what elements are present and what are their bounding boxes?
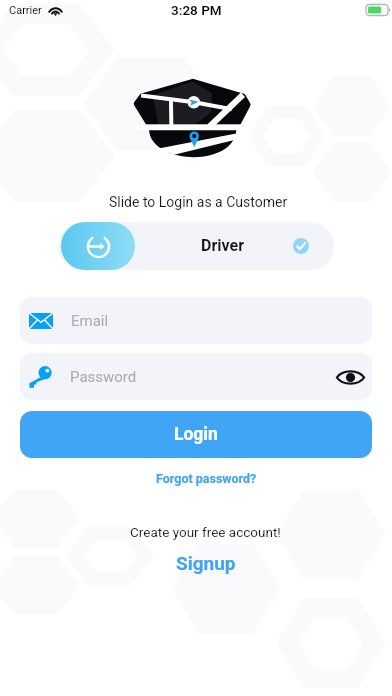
staticText: Slide to Login as a Customer	[109, 194, 288, 210]
staticText: Driver	[201, 236, 244, 255]
button[interactable]: Forgot password?	[156, 471, 257, 486]
button[interactable]: Switch to Customer	[61, 222, 135, 270]
staticText: Email	[71, 312, 109, 330]
button[interactable]: Email	[20, 297, 372, 344]
button[interactable]: Signup	[176, 552, 236, 574]
staticText: Login	[174, 424, 218, 445]
staticText: Create your free account!	[130, 524, 281, 540]
staticText: 3:28 PM	[171, 2, 222, 18]
button[interactable]: Switch to Customer	[58, 222, 334, 270]
button[interactable]: Password	[20, 353, 372, 400]
staticText: Carrier	[9, 4, 42, 17]
staticText: Password	[70, 368, 137, 386]
button[interactable]: Show password	[335, 362, 365, 392]
button[interactable]: Login	[20, 411, 372, 458]
